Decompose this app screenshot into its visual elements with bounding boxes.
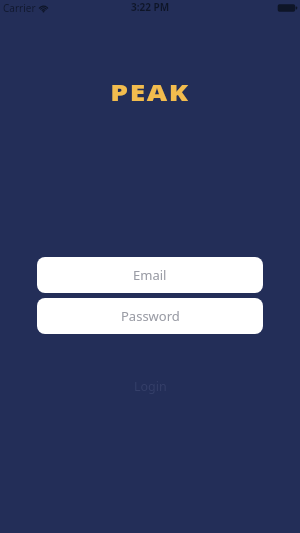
staticText: Email bbox=[133, 266, 167, 284]
button[interactable]: Email bbox=[37, 257, 263, 293]
staticText: Carrier bbox=[3, 1, 36, 15]
staticText: 3:22 PM bbox=[131, 0, 170, 14]
button[interactable]: Login bbox=[124, 374, 177, 399]
staticText: Login bbox=[134, 378, 167, 395]
button[interactable]: Password bbox=[37, 298, 263, 334]
staticText: Password bbox=[121, 307, 180, 325]
staticText: PEAK bbox=[110, 77, 190, 107]
